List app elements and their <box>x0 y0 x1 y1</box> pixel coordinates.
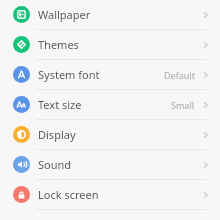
button[interactable]: Wallpaper <box>0 0 220 29</box>
staticText: Display <box>38 127 76 142</box>
other: System font <box>13 66 30 83</box>
other: Themes <box>13 36 30 53</box>
staticText: Small <box>171 99 195 111</box>
other: Sound <box>13 156 30 173</box>
button[interactable]: Sound <box>0 150 220 179</box>
staticText: Default <box>164 69 195 81</box>
staticText: Wallpaper <box>38 7 91 22</box>
button[interactable]: Lock screen <box>0 180 220 209</box>
staticText: Lock screen <box>38 187 99 202</box>
button[interactable]: Text size <box>0 90 220 119</box>
other: Display <box>13 126 30 143</box>
other: Lock screen <box>13 186 30 203</box>
staticText: Sound <box>38 157 72 172</box>
staticText: Text size <box>38 97 82 112</box>
staticText: System font <box>38 67 100 82</box>
other: Text size <box>13 96 30 113</box>
staticText: Themes <box>38 37 79 52</box>
button[interactable]: System font <box>0 60 220 89</box>
button[interactable]: Themes <box>0 30 220 59</box>
other: Wallpaper <box>13 6 30 23</box>
button[interactable]: Display <box>0 120 220 149</box>
